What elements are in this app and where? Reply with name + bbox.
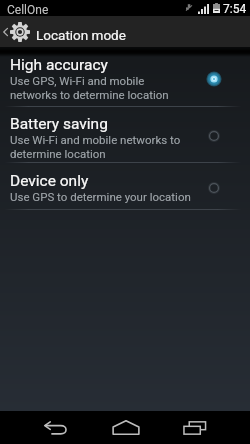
staticText: 7:54 xyxy=(223,2,247,16)
staticText: Location mode xyxy=(36,27,126,43)
staticText: Device only xyxy=(10,172,89,190)
staticText: Use GPS to determine your location xyxy=(10,190,191,203)
staticText: Use Wi-Fi and mobile networks to determi… xyxy=(10,133,192,161)
button[interactable]: Device only xyxy=(0,163,250,209)
button[interactable]: Home xyxy=(102,411,150,444)
button[interactable]: Location mode xyxy=(0,16,250,47)
staticText: Battery saving xyxy=(10,115,108,133)
staticText: CellOne xyxy=(7,3,49,17)
staticText: Use GPS, Wi-Fi and mobile networks to de… xyxy=(10,74,192,102)
button[interactable]: Battery saving xyxy=(0,107,250,162)
staticText: High accuracy xyxy=(10,56,108,74)
button[interactable]: Recent apps xyxy=(171,411,219,444)
button[interactable]: High accuracy xyxy=(0,48,250,106)
button[interactable]: Back xyxy=(32,411,80,444)
